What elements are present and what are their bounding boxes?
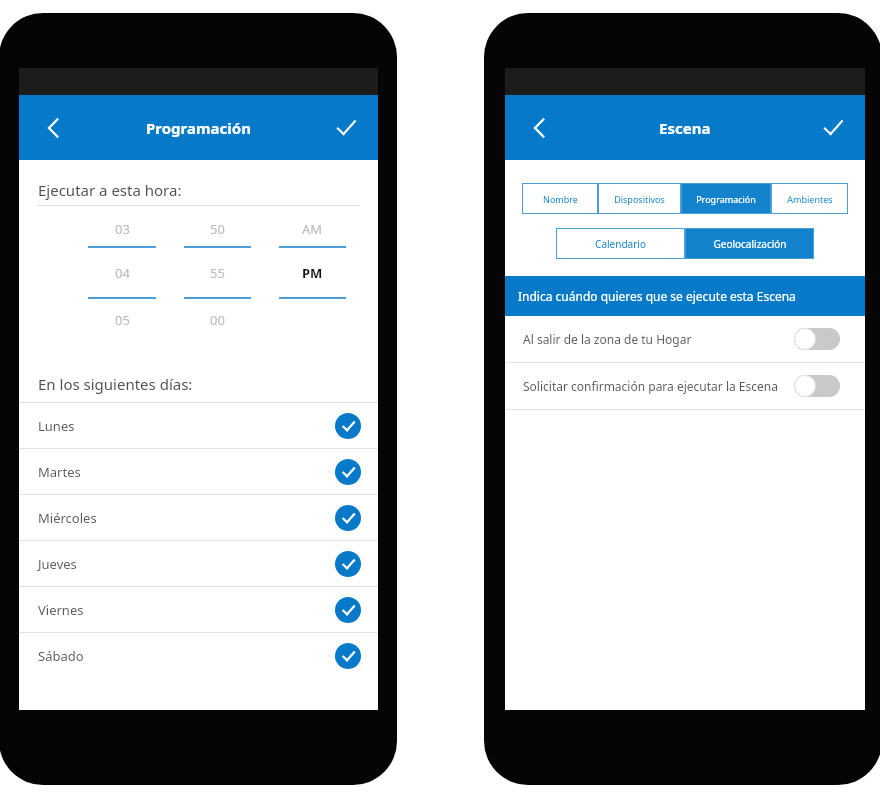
button[interactable]: Sábado [19,633,378,678]
staticText: 55 [210,264,225,282]
button[interactable]: Nombre [522,183,598,214]
staticText: Programación [146,118,251,138]
staticText: Programación [696,193,756,205]
button[interactable]: Viernes [19,587,378,632]
button[interactable]: Confirm [324,106,368,150]
staticText: Nombre [543,193,578,205]
button[interactable]: Jueves [19,541,378,586]
staticText: PM [302,264,323,282]
button[interactable]: Dispositivos [598,183,681,214]
button[interactable]: Miércoles [19,495,378,540]
button[interactable]: Back [517,106,561,150]
button[interactable]: Programación [681,183,771,214]
button[interactable]: Ambientes [771,183,848,214]
button[interactable]: Confirm [811,106,855,150]
staticText: Jueves [38,555,335,573]
staticText: 04 [115,264,130,282]
button[interactable]: Geolocalización [685,228,814,259]
button[interactable]: Martes [19,449,378,494]
staticText: Martes [38,463,335,481]
button[interactable]: Calendario [556,228,685,259]
staticText: Geolocalización [713,237,787,251]
staticText: Solicitar confirmación para ejecutar la … [523,378,794,394]
staticText: Calendario [595,237,646,251]
staticText: Lunes [38,417,335,435]
button[interactable]: Solicitar confirmación para ejecutar la … [505,363,865,409]
staticText: Ejecutar a esta hora: [38,180,182,200]
staticText: 05 [115,311,130,329]
staticText: Dispositivos [614,193,665,205]
staticText: Al salir de la zona de tu Hogar [523,331,794,347]
staticText: Sábado [38,647,335,665]
staticText: 00 [210,311,225,329]
staticText: AM [302,220,323,238]
staticText: Ambientes [787,193,833,205]
button[interactable]: Al salir de la zona de tu Hogar [505,316,865,362]
staticText: Viernes [38,601,335,619]
staticText: 03 [115,220,130,238]
button[interactable]: Lunes [19,403,378,448]
staticText: En los siguientes días: [38,374,193,394]
staticText: Indica cuándo quieres que se ejecute est… [518,288,796,304]
staticText: Escena [659,118,711,138]
staticText: 50 [210,220,225,238]
button[interactable]: Back [31,106,75,150]
staticText: Miércoles [38,509,335,527]
